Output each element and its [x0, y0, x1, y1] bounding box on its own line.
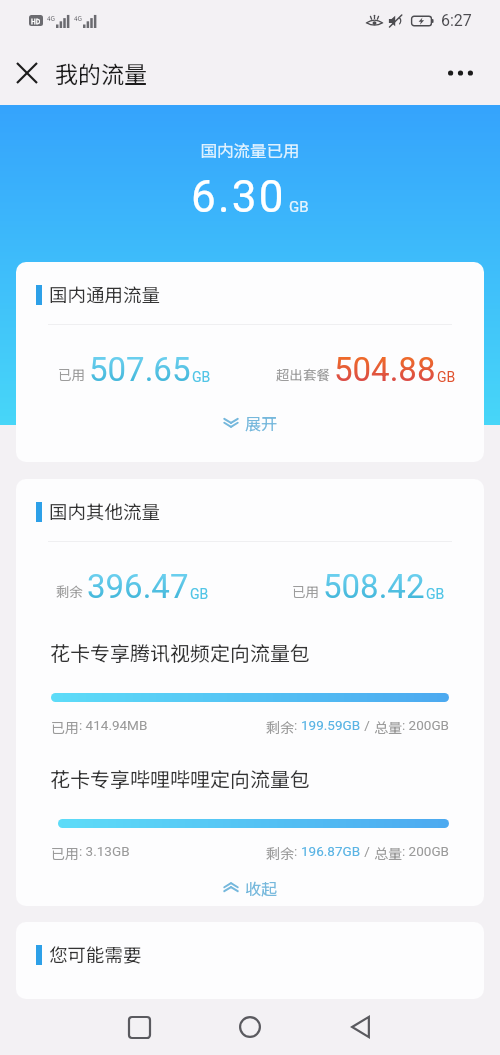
staticText: / — [361, 717, 374, 733]
staticText: : 3.13GB — [79, 843, 130, 859]
staticText: 总量 — [374, 717, 402, 737]
staticText: 展开 — [245, 411, 278, 434]
button[interactable]: 展开 — [16, 406, 484, 438]
staticText: 已用 — [51, 717, 79, 737]
staticText: 国内通用流量 — [49, 281, 161, 308]
staticText: : 200GB — [402, 717, 449, 733]
staticText: 4G — [74, 13, 83, 22]
button[interactable]: Back — [335, 1002, 385, 1052]
staticText: 已用 — [292, 581, 319, 601]
staticText: 剩余 — [56, 581, 83, 601]
staticText: 已用 — [51, 843, 79, 863]
staticText: 4G — [47, 13, 56, 22]
staticText: GB — [289, 198, 309, 216]
button[interactable]: More options — [438, 51, 482, 95]
button[interactable]: Recents — [114, 1002, 164, 1052]
staticText: GB — [437, 369, 456, 385]
button[interactable]: Close — [6, 52, 48, 94]
staticText: / — [361, 843, 374, 859]
staticText: 504.88 — [334, 350, 436, 389]
staticText: 剩余 — [266, 717, 294, 737]
staticText: GB — [426, 586, 445, 602]
staticText: 剩余 — [266, 843, 294, 863]
staticText: 花卡专享腾讯视频定向流量包 — [50, 638, 310, 667]
staticText: 总量 — [374, 843, 402, 863]
staticText: 我的流量 — [55, 56, 147, 89]
staticText: 花卡专享哔哩哔哩定向流量包 — [50, 764, 310, 793]
staticText: 6.30 — [191, 171, 286, 223]
staticText: 508.42 — [323, 567, 425, 606]
staticText: 国内流量已用 — [0, 138, 500, 162]
staticText: 收起 — [245, 876, 278, 899]
staticText: 6:27 — [441, 11, 472, 30]
staticText: GB — [190, 586, 209, 602]
staticText: 196.87GB — [301, 843, 361, 859]
staticText: 507.65 — [89, 350, 191, 389]
staticText: GB — [192, 369, 211, 385]
staticText: 您可能需要 — [49, 941, 142, 968]
button[interactable]: Home — [225, 1002, 275, 1052]
staticText: : 200GB — [402, 843, 449, 859]
staticText: 199.59GB — [301, 717, 361, 733]
staticText: : — [294, 843, 301, 859]
button[interactable]: 收起 — [16, 871, 484, 903]
staticText: : 414.94MB — [79, 717, 148, 733]
staticText: 国内其他流量 — [49, 498, 161, 525]
staticText: 超出套餐 — [276, 364, 330, 384]
staticText: 396.47 — [87, 567, 189, 606]
staticText: 已用 — [58, 364, 85, 384]
staticText: : — [294, 717, 301, 733]
staticText: HD — [31, 16, 41, 25]
